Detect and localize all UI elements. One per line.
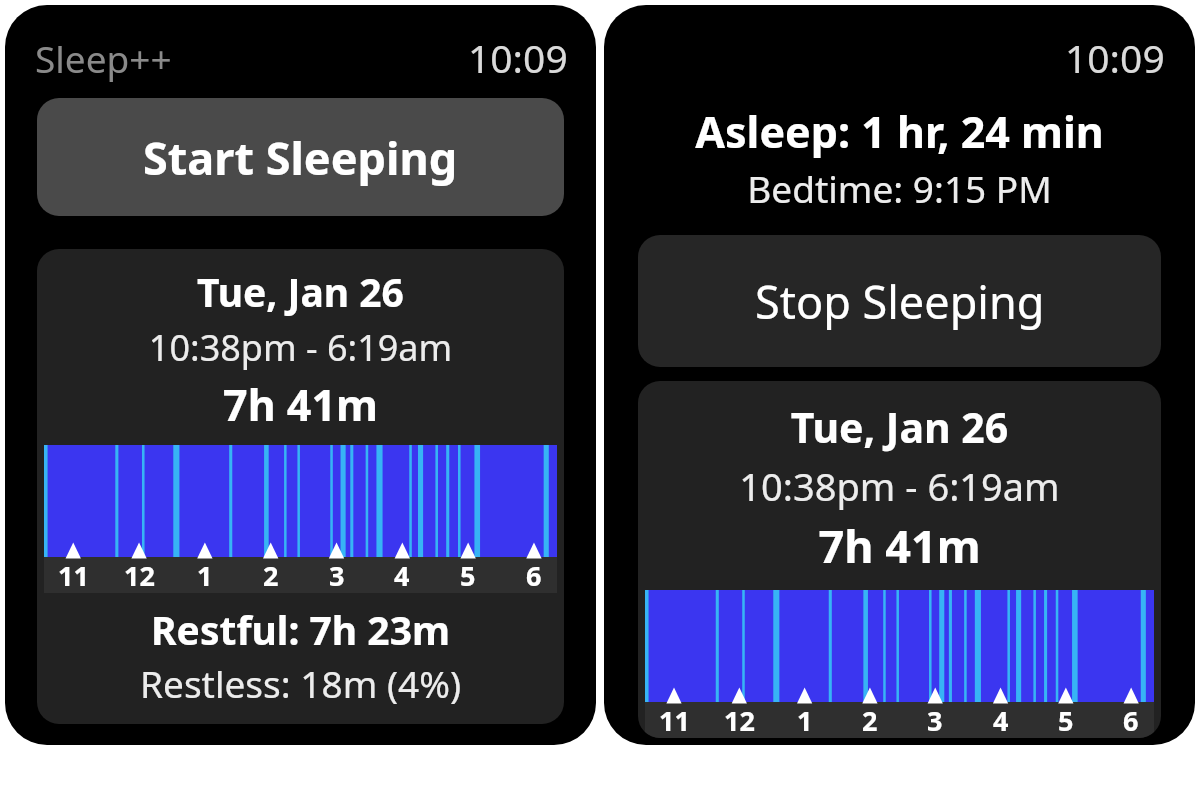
staticText: 6 xyxy=(1123,702,1139,738)
staticText: 3 xyxy=(329,557,345,594)
staticText: Asleep: 1 hr, 24 min xyxy=(604,102,1195,161)
staticText: Stop Sleeping xyxy=(755,271,1045,332)
staticText: 12 xyxy=(124,557,155,594)
staticText: 4 xyxy=(394,557,410,594)
staticText: Start Sleeping xyxy=(143,127,458,188)
staticText: 4 xyxy=(993,702,1009,738)
staticText: 3 xyxy=(927,702,943,738)
staticText: Sleep++ xyxy=(35,33,172,83)
button[interactable]: Tue, Jan 26 xyxy=(638,381,1161,738)
staticText: Restless: 18m (4%) xyxy=(37,658,564,708)
staticText: Bedtime: 9:15 PM xyxy=(604,163,1195,213)
staticText: 10:38pm - 6:19am xyxy=(37,323,564,372)
staticText: 7h 41m xyxy=(37,375,564,434)
staticText: 7h 41m xyxy=(638,515,1161,576)
button[interactable]: Start Sleeping xyxy=(37,98,564,216)
staticText: 5 xyxy=(460,557,476,594)
staticText: 10:09 xyxy=(1065,31,1165,84)
button[interactable]: Stop Sleeping xyxy=(638,235,1161,367)
staticText: 6 xyxy=(526,557,542,594)
staticText: 1 xyxy=(197,557,213,594)
staticText: 12 xyxy=(724,702,755,738)
staticText: 1 xyxy=(797,702,813,738)
staticText: 2 xyxy=(263,557,279,594)
staticText: 5 xyxy=(1058,702,1074,738)
staticText: 11 xyxy=(58,557,89,594)
staticText: Restful: 7h 23m xyxy=(37,603,564,656)
staticText: 10:09 xyxy=(468,31,568,84)
staticText: Tue, Jan 26 xyxy=(37,265,564,318)
staticText: Tue, Jan 26 xyxy=(638,399,1161,455)
staticText: 2 xyxy=(862,702,878,738)
button[interactable]: Tue, Jan 26 xyxy=(37,249,564,724)
staticText: 11 xyxy=(659,702,690,738)
staticText: 10:38pm - 6:19am xyxy=(638,460,1161,512)
